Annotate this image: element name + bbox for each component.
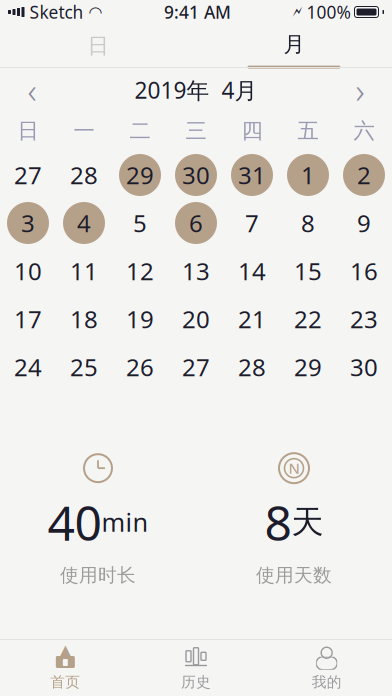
button[interactable]: ▲ [0,644,131,692]
button[interactable]: 月 [196,24,392,68]
button[interactable]: Next month [334,70,386,110]
staticText: 六 [353,118,374,144]
button[interactable]: 9 [336,200,392,246]
staticText: 28 [70,159,98,191]
button[interactable]: 5 [112,200,168,246]
staticText: 14 [238,255,266,287]
staticText: ‹ [27,67,36,113]
button[interactable]: 17 [0,296,56,342]
button[interactable]: 历史 [131,644,261,692]
staticText: 20 [182,303,210,335]
staticText: 五 [297,118,318,144]
staticText: 30 [350,351,378,383]
staticText: 8 [264,490,291,554]
staticText: min [101,505,148,539]
staticText: ◠ [88,3,102,21]
staticText: 27 [182,351,210,383]
staticText: N [288,458,299,478]
button[interactable]: 22 [280,296,336,342]
button[interactable]: 我的 [261,644,392,692]
staticText: 二 [129,118,150,144]
staticText: 29 [294,351,322,383]
button[interactable]: 26 [112,344,168,390]
staticText: 使用天数 [256,564,332,587]
staticText: 一 [73,118,94,144]
button[interactable]: 13 [168,248,224,294]
button[interactable]: 10 [0,248,56,294]
button[interactable]: 29 [112,152,168,198]
button[interactable]: 4 [56,200,112,246]
staticText: 26 [126,351,154,383]
button[interactable]: 11 [56,248,112,294]
button[interactable]: 21 [224,296,280,342]
staticText: 1 [301,159,315,191]
staticText: 9 [357,207,371,239]
button[interactable]: 日 [0,24,196,68]
staticText: 2 [357,159,371,191]
staticText: 使用时长 [60,564,136,587]
button[interactable]: 8 [280,200,336,246]
staticText: 40 [47,490,101,554]
button[interactable]: 3 [0,200,56,246]
staticText: 22 [294,303,322,335]
staticText: 28 [238,351,266,383]
button[interactable]: 6 [168,200,224,246]
staticText: 我的 [312,673,342,691]
button[interactable]: 31 [224,152,280,198]
staticText: 4 [77,207,91,239]
staticText: Sketch [29,0,83,23]
staticText: 7 [245,207,259,239]
staticText: 18 [70,303,98,335]
staticText: 9:41 AM [164,0,231,23]
button[interactable]: 2 [336,152,392,198]
staticText: 30 [182,159,210,191]
staticText: 8 [301,207,315,239]
button[interactable]: 7 [224,200,280,246]
staticText: 100% [306,0,350,23]
staticText: 6 [189,207,203,239]
staticText: 23 [350,303,378,335]
staticText: 11 [70,255,98,287]
staticText: 17 [14,303,42,335]
staticText: 🗲 [292,5,302,19]
staticText: 29 [126,159,154,191]
staticText: 历史 [181,673,211,691]
button[interactable]: Previous month [6,70,58,110]
button[interactable]: 18 [56,296,112,342]
button[interactable]: 24 [0,344,56,390]
button[interactable]: 1 [280,152,336,198]
staticText: 3 [21,207,35,239]
button[interactable]: 15 [280,248,336,294]
button[interactable]: 12 [112,248,168,294]
staticText: 31 [238,159,266,191]
staticText: 首页 [50,673,80,691]
button[interactable]: 25 [56,344,112,390]
button[interactable]: 23 [336,296,392,342]
staticText: 10 [14,255,42,287]
staticText: 19 [126,303,154,335]
button[interactable]: 30 [168,152,224,198]
staticText: 21 [238,303,266,335]
staticText: 13 [182,255,210,287]
button[interactable]: 27 [168,344,224,390]
button[interactable]: 28 [224,344,280,390]
button[interactable]: 28 [56,152,112,198]
staticText: 月 [283,31,304,58]
staticText: 日 [87,33,108,59]
staticText: 27 [14,159,42,191]
staticText: ▲ [58,640,72,662]
button[interactable]: 20 [168,296,224,342]
button[interactable]: 27 [0,152,56,198]
staticText: 三 [185,118,206,144]
staticText: 25 [70,351,98,383]
staticText: 天 [291,502,323,542]
button[interactable]: 16 [336,248,392,294]
button[interactable]: 14 [224,248,280,294]
button[interactable]: 30 [336,344,392,390]
staticText: 5 [133,207,147,239]
staticText: 日 [17,118,38,144]
button[interactable]: 29 [280,344,336,390]
staticText: 2019年 4月 [134,75,257,105]
button[interactable]: 19 [112,296,168,342]
staticText: › [355,67,364,113]
